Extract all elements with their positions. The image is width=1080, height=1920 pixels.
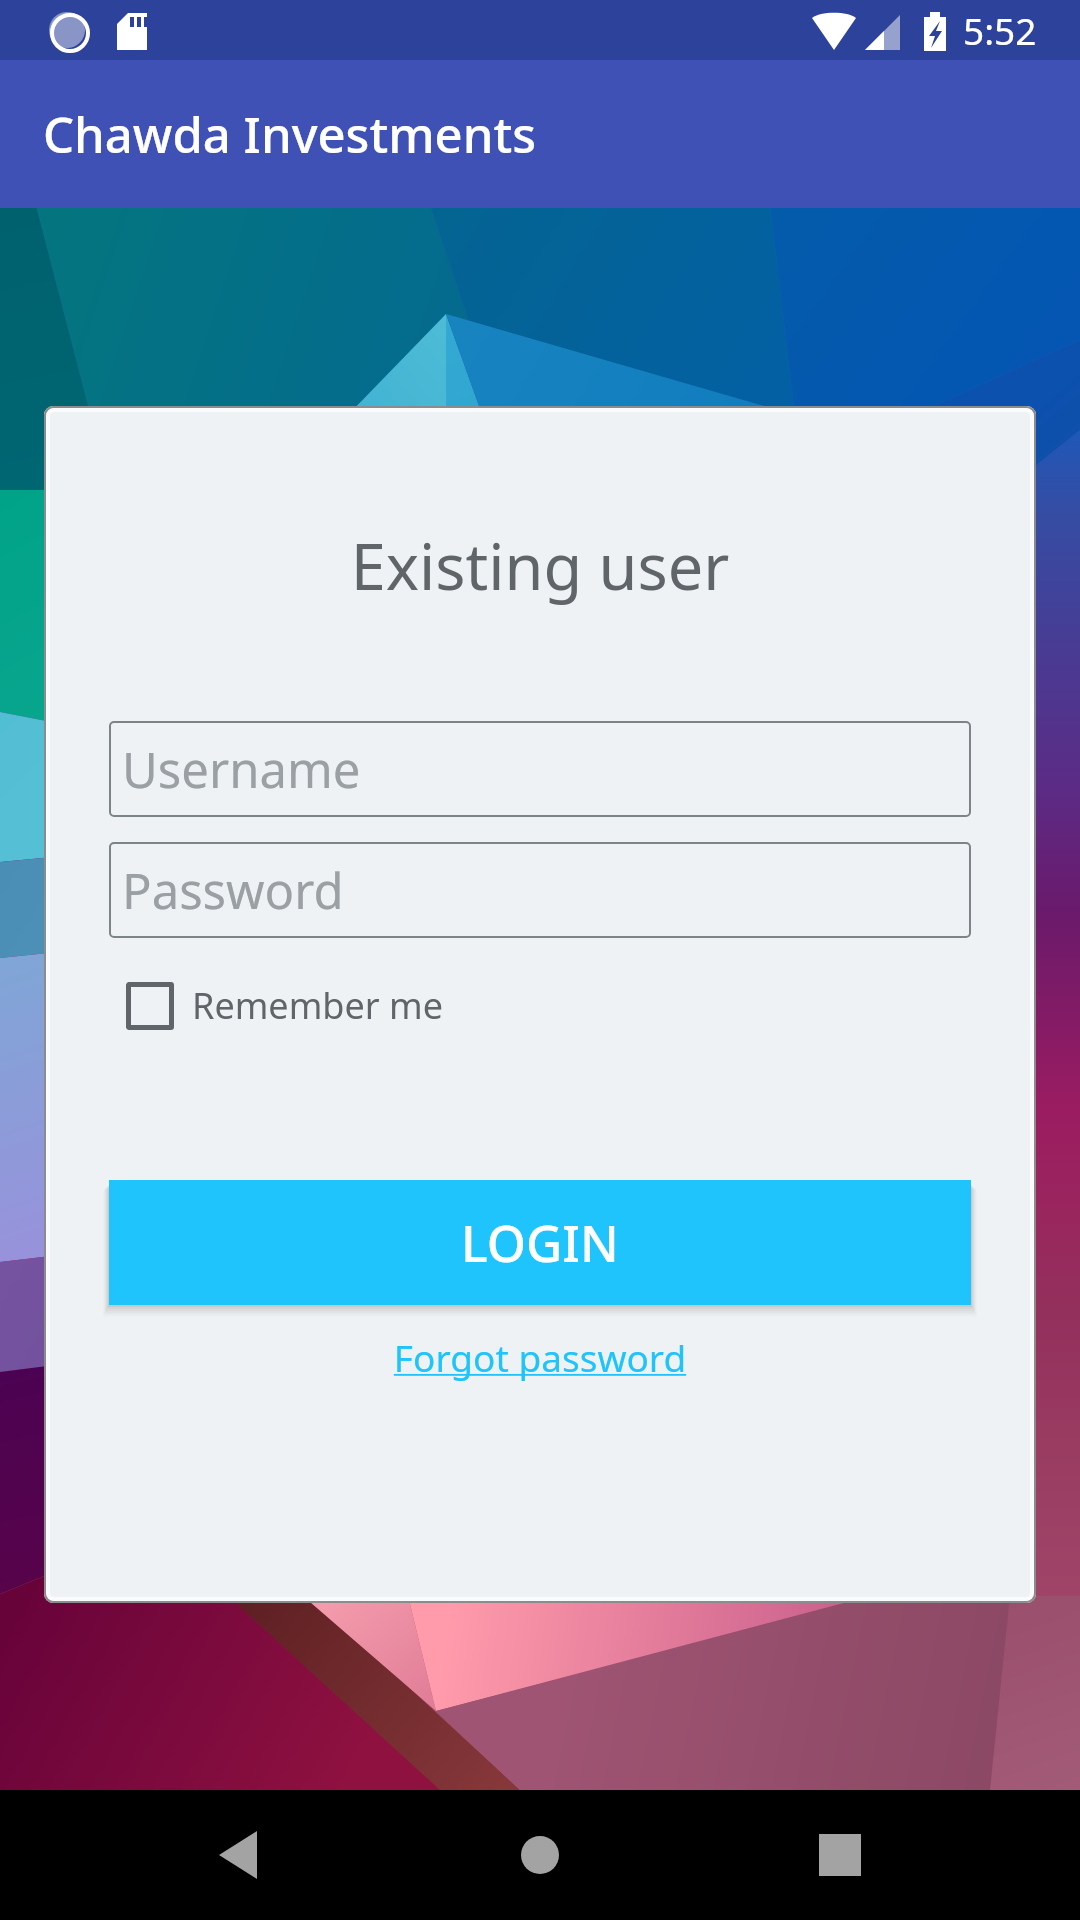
button[interactable]: Recents [795, 1810, 885, 1900]
button[interactable]: Password [109, 842, 971, 938]
staticText: 5:52 [963, 5, 1037, 55]
staticText: LOGIN [461, 1209, 619, 1277]
staticText: Chawda Investments [43, 101, 536, 168]
staticText: Remember me [192, 981, 443, 1030]
button[interactable]: Home [495, 1810, 585, 1900]
button[interactable]: Remember me [126, 981, 443, 1030]
button[interactable]: LOGIN [109, 1180, 971, 1305]
staticText: Existing user [44, 523, 1036, 609]
button[interactable]: Forgot password [44, 1332, 1036, 1382]
button[interactable]: Username [109, 721, 971, 817]
staticText: Username [122, 736, 361, 803]
staticText: Password [122, 857, 344, 924]
button[interactable]: Back [195, 1810, 285, 1900]
